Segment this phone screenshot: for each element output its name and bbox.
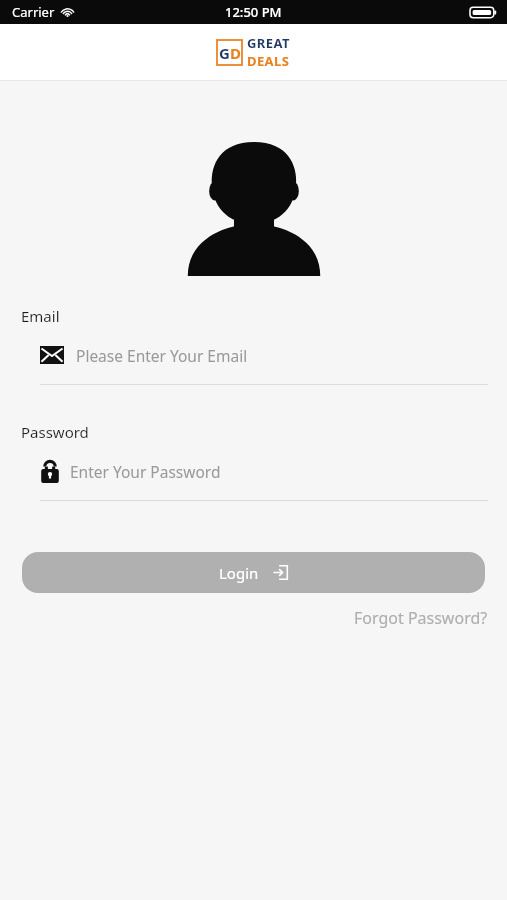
staticText: Forgot Password? (354, 607, 488, 629)
staticText: Password (21, 422, 507, 442)
staticText: D (230, 43, 241, 63)
button[interactable]: Login (22, 552, 485, 593)
other: Password (40, 459, 60, 483)
staticText: Please Enter Your Email (76, 345, 248, 366)
staticText: GREAT (247, 34, 290, 52)
button[interactable]: Email (40, 340, 488, 385)
staticText: Enter Your Password (70, 461, 221, 482)
staticText: Carrier (12, 3, 55, 21)
button[interactable]: Password (40, 456, 488, 501)
button[interactable]: Forgot Password? (354, 607, 488, 629)
staticText: Email (21, 306, 507, 326)
staticText: 12:50 PM (225, 3, 282, 21)
staticText: DEALS (247, 52, 290, 70)
staticText: G (219, 43, 230, 63)
staticText: Login (219, 563, 259, 583)
other: Email (40, 346, 64, 364)
